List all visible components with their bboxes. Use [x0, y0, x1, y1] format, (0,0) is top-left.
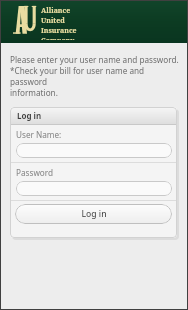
- staticText: United: [41, 16, 65, 26]
- button[interactable]: Log in: [15, 204, 172, 224]
- staticText: *Check your bill for user name and passw…: [10, 65, 179, 87]
- staticText: Please enter your user name and password…: [10, 54, 179, 65]
- button[interactable]: [16, 181, 172, 196]
- other: Alliance United Insurance Company logo: [12, 4, 37, 36]
- staticText: Insurance: [41, 26, 77, 36]
- staticText: information.: [10, 87, 58, 98]
- staticText: Log in: [17, 110, 42, 121]
- staticText: Log in: [81, 208, 107, 220]
- staticText: Alliance: [41, 6, 71, 16]
- staticText: User Name:: [16, 129, 62, 140]
- button[interactable]: [16, 143, 172, 158]
- staticText: Company: [41, 36, 75, 40]
- staticText: Password: [16, 167, 54, 178]
